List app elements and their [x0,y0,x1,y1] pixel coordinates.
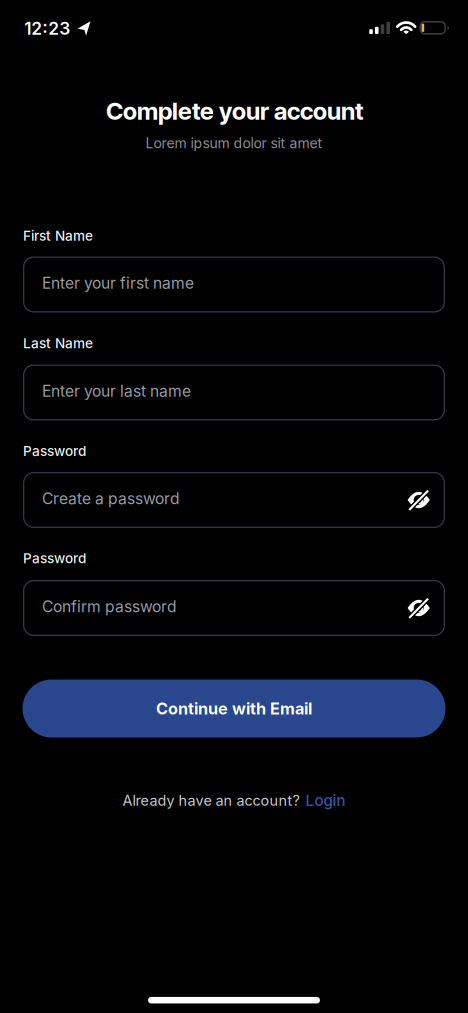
staticText: Continue with Email [156,699,312,718]
staticText: Complete your account [106,96,364,125]
button[interactable]: Continue with Email [22,679,445,737]
button[interactable]: Login [305,791,345,810]
staticText: Enter your last name [42,382,191,400]
button[interactable]: Create a password [23,472,445,528]
staticText: Confirm password [42,597,177,616]
staticText: Password [23,550,86,567]
button[interactable]: Show password [407,597,430,619]
button[interactable]: Enter your first name [23,256,445,312]
staticText: Lorem ipsum dolor sit amet [145,135,322,151]
button[interactable]: Enter your last name [23,364,445,420]
staticText: 12:23 [24,18,70,39]
staticText: Already have an account? [122,792,299,809]
staticText: Create a password [42,489,180,508]
button[interactable]: Confirm password [23,580,445,636]
staticText: Enter your first name [42,274,194,292]
staticText: First Name [23,228,93,244]
staticText: Last Name [23,335,93,351]
button[interactable]: Show password [407,489,430,511]
staticText: Password [23,443,86,459]
staticText: Login [305,791,345,810]
